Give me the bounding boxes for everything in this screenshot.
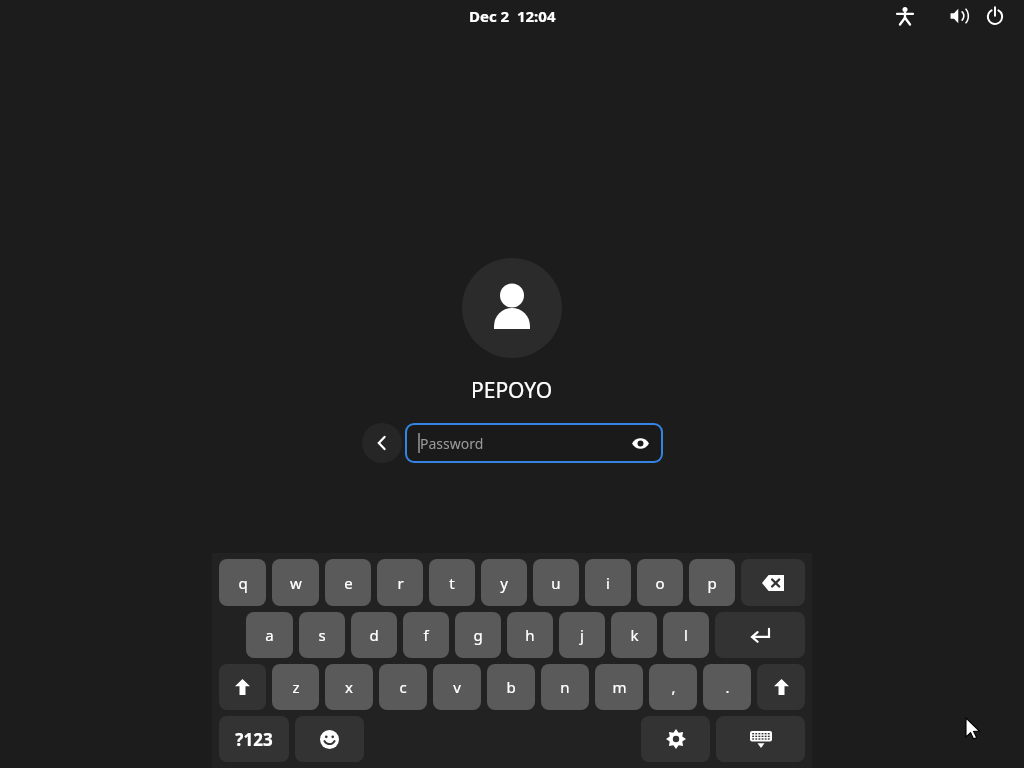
button[interactable]: emoji — [295, 716, 364, 762]
button[interactable]: , — [649, 664, 697, 710]
staticText: w — [290, 573, 302, 593]
staticText: PEPOYO — [471, 376, 553, 405]
button[interactable]: gear — [641, 716, 710, 762]
button[interactable]: Power — [980, 1, 1010, 31]
staticText: q — [238, 573, 248, 593]
staticText: e — [344, 573, 353, 593]
staticText: . — [725, 677, 730, 697]
button[interactable]: enter — [715, 612, 805, 658]
button[interactable]: h — [507, 612, 553, 658]
button[interactable]: t — [429, 559, 475, 606]
button[interactable]: hide — [716, 716, 805, 762]
staticText: z — [292, 677, 300, 697]
button[interactable]: n — [541, 664, 589, 710]
button[interactable]: . — [703, 664, 751, 710]
staticText: s — [318, 625, 326, 645]
staticText: d — [369, 625, 379, 645]
button[interactable]: User avatar — [462, 258, 562, 358]
staticText: n — [560, 677, 570, 697]
staticText: l — [684, 625, 688, 645]
button[interactable]: u — [533, 559, 579, 606]
staticText: x — [345, 677, 353, 697]
button[interactable]: a — [246, 612, 293, 658]
button[interactable]: Accessibility — [890, 1, 920, 31]
staticText: ?123 — [235, 728, 273, 751]
button[interactable]: Password — [405, 423, 663, 463]
button[interactable]: j — [559, 612, 605, 658]
button[interactable]: o — [637, 559, 683, 606]
button[interactable]: e — [325, 559, 371, 606]
staticText: a — [265, 625, 274, 645]
staticText: g — [473, 625, 483, 645]
button[interactable]: x — [325, 664, 373, 710]
staticText: c — [399, 677, 407, 697]
button[interactable]: c — [379, 664, 427, 710]
button[interactable]: f — [403, 612, 449, 658]
button[interactable]: v — [433, 664, 481, 710]
button[interactable]: Show password — [627, 430, 653, 456]
staticText: m — [612, 677, 627, 697]
button[interactable]: Back — [362, 423, 402, 463]
staticText: t — [449, 573, 455, 593]
button[interactable]: shift — [219, 664, 266, 710]
staticText: r — [397, 573, 404, 593]
button[interactable]: d — [351, 612, 397, 658]
button[interactable]: g — [455, 612, 501, 658]
button[interactable]: y — [481, 559, 527, 606]
button[interactable]: s — [299, 612, 345, 658]
button[interactable]: w — [272, 559, 319, 606]
staticText: , — [671, 677, 676, 697]
staticText: h — [525, 625, 535, 645]
button[interactable]: p — [689, 559, 735, 606]
button[interactable]: b — [487, 664, 535, 710]
staticText: u — [551, 573, 561, 593]
staticText: i — [606, 573, 610, 593]
staticText: y — [500, 573, 508, 593]
button[interactable]: i — [585, 559, 631, 606]
button[interactable]: Volume — [944, 1, 974, 31]
button[interactable]: r — [377, 559, 423, 606]
button[interactable]: q — [219, 559, 266, 606]
button[interactable]: backspace — [741, 559, 805, 606]
button[interactable]: k — [611, 612, 657, 658]
staticText: p — [707, 573, 717, 593]
button[interactable]: l — [663, 612, 709, 658]
staticText: Password — [420, 434, 484, 453]
button[interactable]: shift — [757, 664, 805, 710]
staticText: v — [453, 677, 461, 697]
staticText: j — [580, 625, 584, 645]
staticText: o — [655, 573, 665, 593]
staticText: Dec 2 12:04 — [469, 6, 556, 26]
button[interactable]: ?123 — [219, 716, 289, 762]
button[interactable]: m — [595, 664, 643, 710]
staticText: f — [423, 625, 429, 645]
staticText: b — [506, 677, 516, 697]
button[interactable]: z — [272, 664, 319, 710]
staticText: k — [630, 625, 639, 645]
